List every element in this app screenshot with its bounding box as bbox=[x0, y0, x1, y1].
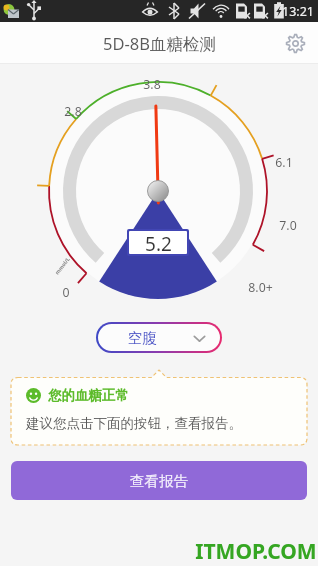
staticText: 您的血糖正常 bbox=[48, 387, 129, 404]
staticText: 建议您点击下面的按钮，查看报告。 bbox=[26, 415, 242, 432]
staticText: mmol/L bbox=[53, 255, 71, 276]
staticText: 7.0 bbox=[279, 217, 297, 234]
staticText: 2.8 bbox=[64, 103, 82, 120]
staticText: ITMOP.COM bbox=[195, 537, 317, 566]
button[interactable]: 查看报告 bbox=[11, 461, 307, 500]
staticText: 6.1 bbox=[275, 154, 293, 171]
button[interactable]: 空腹 bbox=[98, 324, 220, 351]
staticText: 8.0+ bbox=[248, 279, 273, 296]
staticText: 3.8 bbox=[143, 76, 161, 93]
staticText: 查看报告 bbox=[130, 472, 188, 490]
staticText: 5.2 bbox=[145, 231, 172, 254]
staticText: 0 bbox=[62, 284, 70, 301]
staticText: 空腹 bbox=[128, 329, 157, 347]
staticText: 13:21 bbox=[282, 3, 314, 20]
button[interactable]: Settings bbox=[279, 27, 311, 59]
staticText: 5D-8B血糖检测 bbox=[103, 32, 216, 55]
